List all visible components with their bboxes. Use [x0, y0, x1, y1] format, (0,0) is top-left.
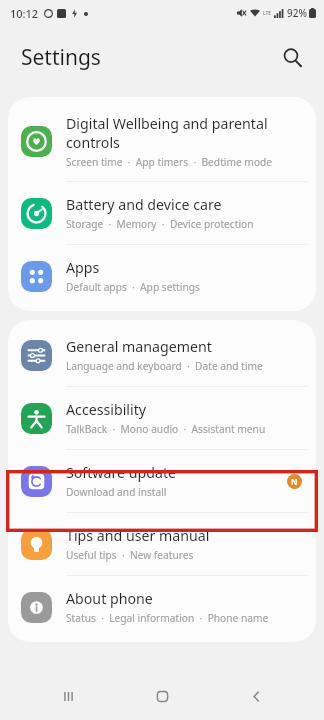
- staticText: Language and keyboard · Date and time: [66, 359, 263, 373]
- staticText: 92%: [287, 6, 307, 20]
- button[interactable]: General management: [8, 324, 316, 386]
- button[interactable]: Home: [136, 672, 188, 720]
- button[interactable]: Tips and user manual: [8, 513, 316, 575]
- staticText: Software update: [66, 463, 177, 482]
- staticText: TalkBack · Mono audio · Assistant menu: [66, 422, 266, 436]
- button[interactable]: Search: [272, 37, 312, 77]
- staticText: LTE: [263, 10, 272, 17]
- staticText: Tips and user manual: [66, 526, 210, 545]
- staticText: Screen time · App timers · Bedtime mode: [66, 155, 273, 169]
- button[interactable]: Apps: [8, 245, 316, 307]
- button[interactable]: About phone: [8, 576, 316, 638]
- staticText: Apps: [66, 258, 100, 277]
- button[interactable]: Back: [230, 672, 282, 720]
- button[interactable]: Accessibility: [8, 387, 316, 449]
- button[interactable]: Digital Wellbeing and parental: [8, 101, 316, 181]
- staticText: Status · Legal information · Phone name: [66, 611, 269, 625]
- staticText: About phone: [66, 589, 153, 608]
- staticText: Accessibility: [66, 400, 147, 419]
- staticText: Useful tips · New features: [66, 548, 194, 562]
- staticText: Settings: [21, 43, 101, 72]
- staticText: Battery and device care: [66, 195, 222, 214]
- staticText: Download and install: [66, 485, 167, 499]
- staticText: General management: [66, 337, 212, 356]
- staticText: N: [291, 476, 298, 487]
- staticText: Storage · Memory · Device protection: [66, 217, 254, 231]
- button[interactable]: Recents: [42, 672, 94, 720]
- button[interactable]: Battery and device care: [8, 182, 316, 244]
- staticText: controls: [66, 133, 120, 152]
- staticText: 10:12: [10, 6, 39, 21]
- staticText: Digital Wellbeing and parental: [66, 114, 268, 133]
- button[interactable]: Software update: [8, 450, 316, 512]
- staticText: Default apps · App settings: [66, 280, 200, 294]
